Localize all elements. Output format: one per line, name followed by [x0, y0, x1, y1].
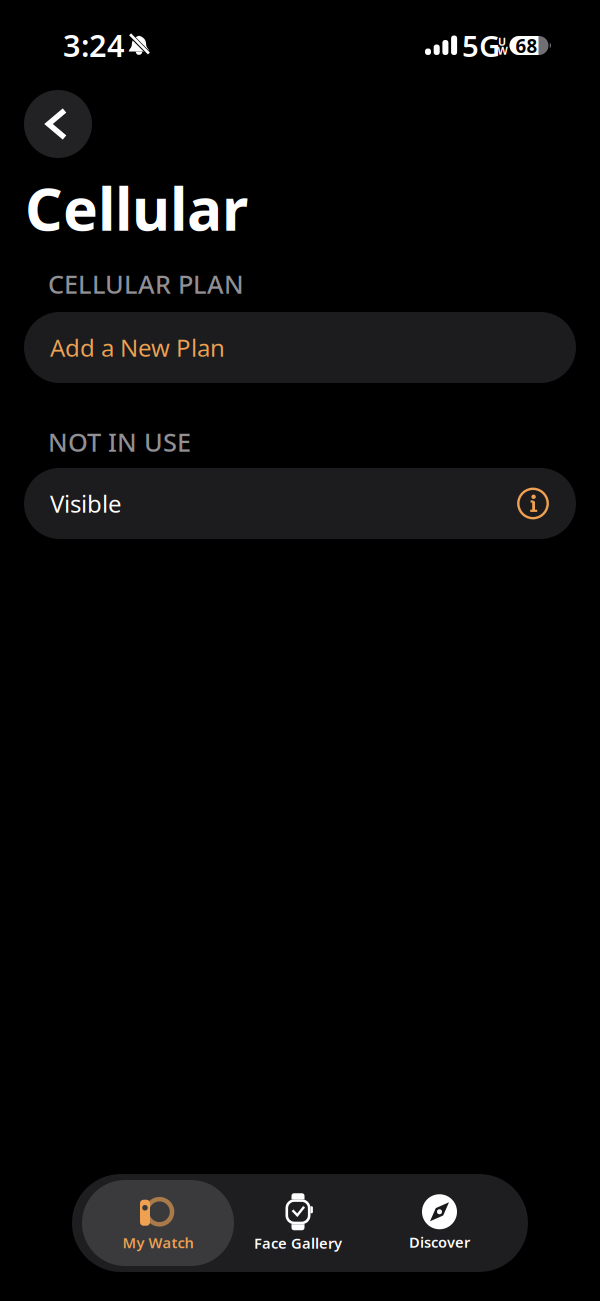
button[interactable]: My Watch [82, 1180, 234, 1266]
button[interactable]: Discover [369, 1180, 509, 1266]
staticText: Add a New Plan [50, 332, 225, 363]
button[interactable]: Back [24, 90, 92, 158]
staticText: Cellular [25, 169, 248, 247]
button[interactable]: Add a New Plan [24, 312, 576, 383]
staticText: My Watch [122, 1233, 193, 1252]
button[interactable]: Visible [24, 468, 576, 539]
button[interactable]: Face Gallery [223, 1180, 373, 1266]
staticText: 3:24 [63, 25, 125, 65]
staticText: Visible [50, 488, 122, 519]
staticText: W [497, 43, 507, 58]
staticText: CELLULAR PLAN [48, 267, 244, 301]
staticText: NOT IN USE [48, 425, 191, 459]
staticText: Discover [409, 1232, 470, 1252]
staticText: 5G [462, 26, 500, 65]
staticText: U [498, 34, 506, 49]
staticText: Face Gallery [254, 1233, 342, 1253]
staticText: 68 [515, 33, 537, 58]
